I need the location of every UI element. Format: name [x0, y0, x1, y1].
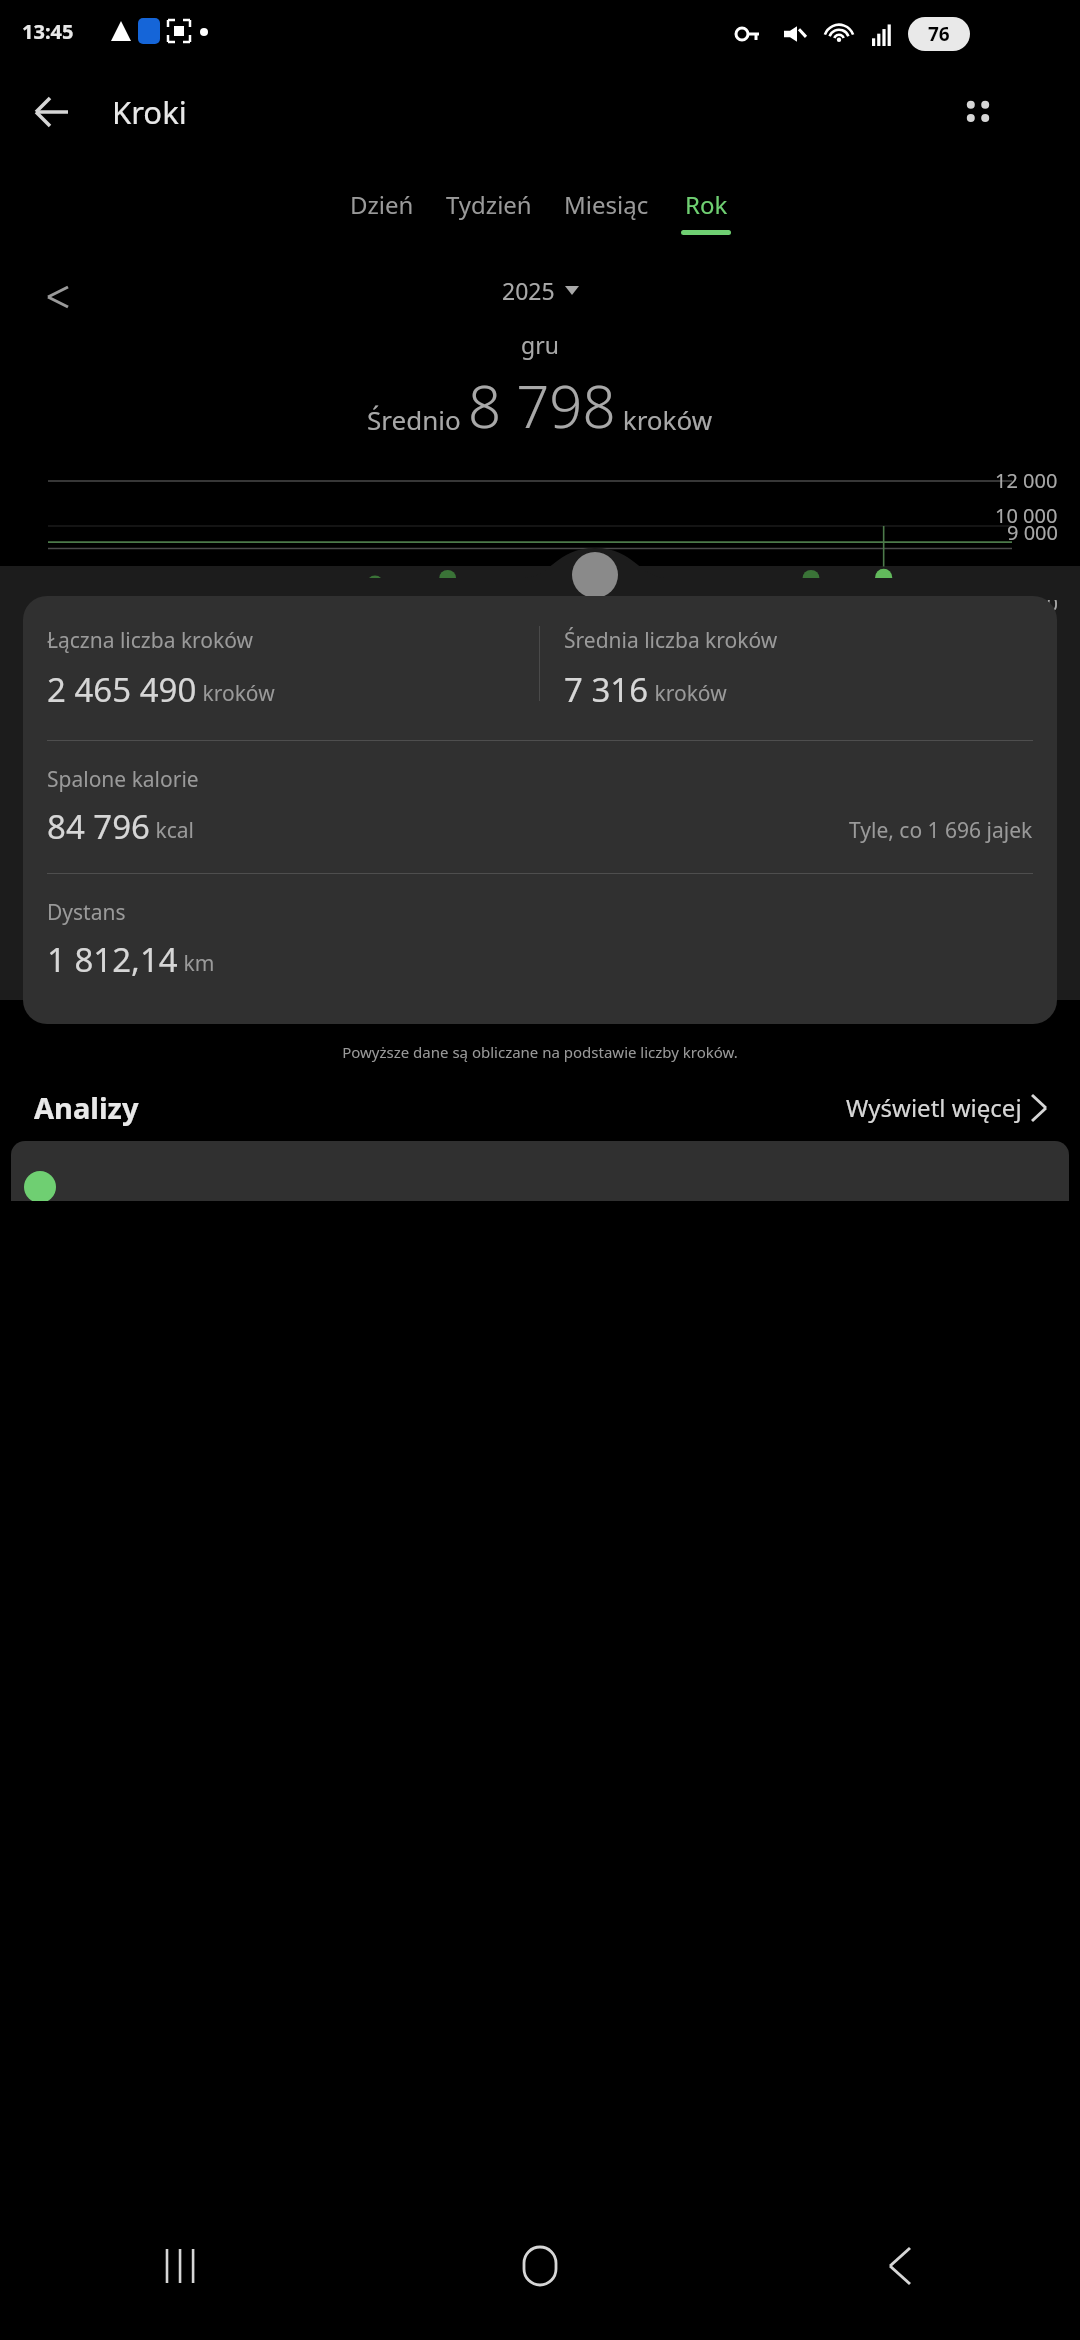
- button[interactable]: Dzień: [340, 186, 424, 232]
- staticText: Rok: [685, 188, 728, 221]
- staticText: 13:45: [22, 18, 74, 45]
- staticText: Wyświetl więcej: [846, 1091, 1022, 1124]
- staticText: Średnio: [367, 402, 468, 437]
- staticText: Dzień: [350, 188, 414, 221]
- button[interactable]: More options: [948, 82, 1008, 142]
- staticText: 1 812,14: [47, 937, 178, 982]
- staticText: 9 000: [1007, 519, 1058, 546]
- staticText: 0: [1046, 730, 1058, 757]
- button[interactable]: Back: [22, 82, 82, 142]
- staticText: Powyższe dane są obliczane na podstawie …: [0, 1042, 1080, 1062]
- staticText: Tyle, co 1 696 jajek: [849, 816, 1033, 845]
- staticText: 3: [168, 807, 180, 834]
- staticText: 84 796: [47, 804, 150, 849]
- staticText: 2025: [502, 275, 555, 306]
- staticText: Analizy: [34, 1088, 139, 1127]
- staticText: Średnia liczba kroków: [564, 626, 778, 655]
- button[interactable]: Tydzień: [436, 186, 542, 232]
- staticText: kroków: [649, 679, 727, 708]
- staticText: 6 000: [1007, 590, 1058, 617]
- button[interactable]: Home: [360, 2192, 720, 2340]
- button[interactable]: 2025: [502, 275, 579, 306]
- staticText: 76: [928, 21, 950, 47]
- button[interactable]: Łączna liczba kroków: [23, 596, 1057, 1024]
- button[interactable]: Rok: [671, 186, 741, 237]
- staticText: 2 465 490: [47, 667, 197, 712]
- staticText: Tydzień: [446, 188, 532, 221]
- button[interactable]: Previous year: [30, 269, 86, 325]
- staticText: Łączna liczba kroków: [47, 626, 254, 655]
- staticText: kroków: [197, 679, 275, 708]
- staticText: 2: [126, 807, 138, 834]
- staticText: Kroki: [112, 91, 187, 133]
- staticText: Dystans: [47, 898, 126, 927]
- staticText: 10 000: [995, 502, 1058, 529]
- staticText: 1: [82, 807, 94, 834]
- staticText: Spalone kalorie: [47, 765, 199, 794]
- staticText: Miesiąc: [564, 188, 649, 221]
- staticText: kcal: [150, 816, 194, 845]
- button[interactable]: [11, 1141, 1069, 1201]
- staticText: 8 798: [468, 366, 616, 445]
- staticText: kroków: [616, 402, 713, 437]
- button[interactable]: Miesiąc: [554, 186, 659, 232]
- staticText: km: [178, 949, 215, 978]
- staticText: 12 000: [995, 467, 1058, 494]
- staticText: gru: [521, 329, 559, 360]
- button[interactable]: Wyświetl więcej: [846, 1091, 1046, 1124]
- button[interactable]: Recent apps: [0, 2192, 360, 2340]
- staticText: 7 316: [564, 667, 649, 712]
- button[interactable]: Back: [720, 2192, 1080, 2340]
